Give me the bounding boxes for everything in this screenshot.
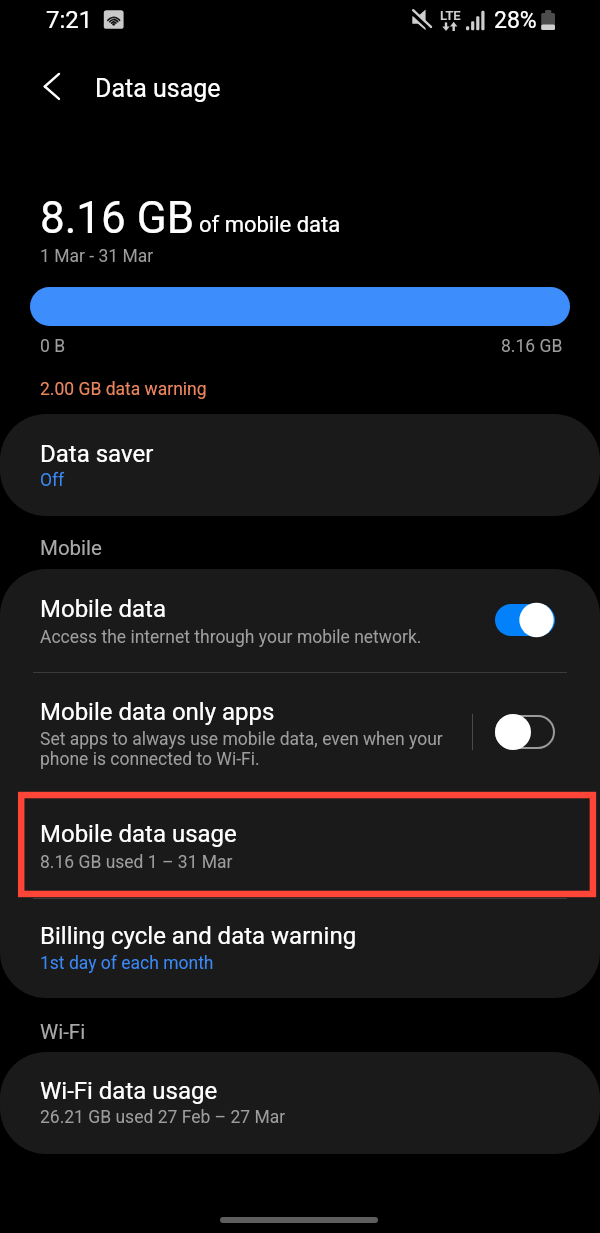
button[interactable] [0, 1052, 600, 1154]
staticText: Mobile data only apps [40, 698, 275, 726]
staticText: Wi-Fi data usage [40, 1077, 218, 1105]
staticText: 2.00 GB data warning [40, 379, 207, 400]
staticText: Set apps to always use mobile data, even… [40, 729, 443, 750]
button[interactable]: Navigate up [24, 62, 68, 106]
staticText: of mobile data [199, 212, 341, 238]
staticText: 1 Mar - 31 Mar [40, 246, 154, 267]
staticText: 1st day of each month [40, 953, 214, 974]
staticText: Billing cycle and data warning [40, 922, 357, 950]
staticText: Data usage [95, 74, 221, 103]
staticText: Wi-Fi [40, 1020, 86, 1044]
button[interactable] [0, 893, 600, 998]
staticText: 0 B [40, 336, 66, 357]
button[interactable] [0, 791, 600, 892]
button[interactable]: Mobile data only apps, off [489, 709, 561, 755]
staticText: Data saver [40, 440, 154, 468]
button[interactable]: Mobile data, on [489, 598, 561, 642]
staticText: Access the internet through your mobile … [40, 627, 422, 648]
button[interactable] [0, 673, 600, 789]
staticText: 7:21 [46, 6, 93, 34]
button[interactable] [0, 414, 600, 516]
staticText: Mobile data usage [40, 820, 237, 848]
staticText: 8.16 GB used 1 – 31 Mar [40, 852, 233, 873]
staticText: 28% [494, 7, 537, 34]
staticText: 26.21 GB used 27 Feb – 27 Mar [40, 1107, 286, 1128]
staticText: 8.16 GB [40, 192, 195, 244]
staticText: phone is connected to Wi-Fi. [40, 749, 260, 770]
staticText: LTE [440, 8, 461, 23]
button[interactable] [0, 569, 600, 672]
staticText: Mobile data [40, 595, 166, 623]
staticText: Mobile [40, 536, 102, 560]
staticText: 8.16 GB [501, 336, 563, 357]
staticText: Off [40, 470, 65, 491]
